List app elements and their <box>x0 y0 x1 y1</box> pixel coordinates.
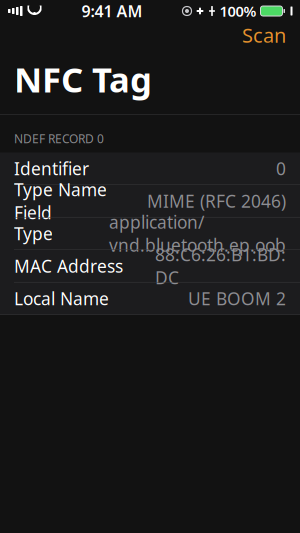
staticText: 0 <box>276 157 286 180</box>
button[interactable]: Local Name <box>0 282 300 314</box>
staticText: Local Name <box>14 287 109 310</box>
staticText: UE BOOM 2 <box>188 287 286 310</box>
staticText: MAC Address <box>14 254 123 277</box>
button[interactable]: Scan <box>228 17 300 53</box>
staticText: 100% <box>219 1 256 21</box>
staticText: NDEF RECORD 0 <box>14 130 104 146</box>
button[interactable]: Type <box>0 217 300 249</box>
staticText: application/vnd.bluetooth.ep.oob <box>109 210 286 256</box>
staticText: Scan <box>242 22 286 48</box>
staticText: Identifier <box>14 157 89 180</box>
staticText: Type <box>14 222 53 245</box>
staticText: NFC Tag <box>14 56 152 102</box>
staticText: Type Name Field <box>14 178 107 224</box>
staticText: 88:C6:26:B1:BD:DC <box>155 243 286 289</box>
staticText: MIME (RFC 2046) <box>147 189 286 212</box>
button[interactable]: Type Name Field <box>0 185 300 217</box>
button[interactable]: MAC Address <box>0 250 300 282</box>
staticText: 9:41 AM <box>81 0 142 22</box>
button[interactable]: Identifier <box>0 152 300 184</box>
